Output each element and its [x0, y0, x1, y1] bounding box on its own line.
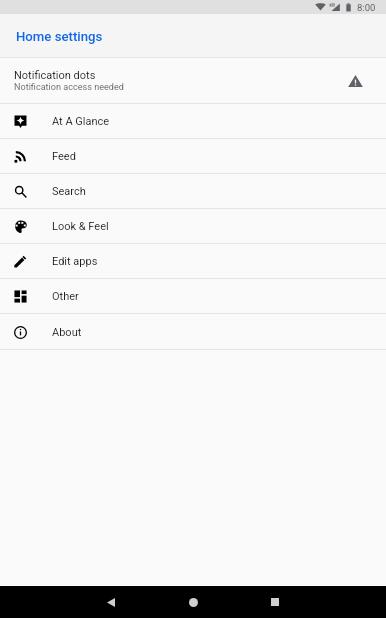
staticText: Search	[52, 185, 86, 198]
button[interactable]: Look & Feel	[0, 209, 386, 244]
staticText: 8:00	[357, 2, 376, 13]
staticText: Notification access needed	[14, 82, 124, 93]
button[interactable]: At A Glance	[0, 104, 386, 139]
button[interactable]: Search	[0, 174, 386, 209]
button[interactable]: Back	[87, 586, 135, 618]
staticText: Notification dots	[14, 69, 96, 82]
button[interactable]: Edit apps	[0, 244, 386, 279]
staticText: Look & Feel	[52, 220, 109, 233]
button[interactable]: About	[0, 314, 386, 350]
button[interactable]: Feed	[0, 139, 386, 174]
staticText: Other	[52, 290, 79, 303]
button[interactable]: Notification dots	[0, 58, 386, 104]
staticText: Feed	[52, 150, 76, 163]
staticText: Edit apps	[52, 255, 98, 268]
staticText: Home settings	[16, 29, 103, 44]
staticText: At A Glance	[52, 115, 110, 128]
button[interactable]: Other	[0, 279, 386, 314]
staticText: About	[52, 326, 82, 339]
button[interactable]: Recents	[251, 586, 299, 618]
button[interactable]: Home	[169, 586, 217, 618]
